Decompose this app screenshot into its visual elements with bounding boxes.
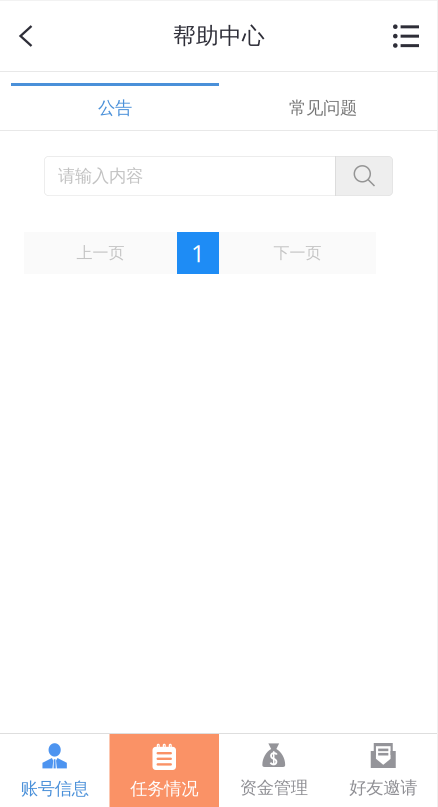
staticText: 请输入内容 — [58, 165, 143, 187]
staticText: 账号信息 — [21, 778, 89, 799]
staticText: 公告 — [98, 97, 132, 119]
button[interactable]: 好友邀请 — [328, 734, 438, 807]
button[interactable]: 任务情况 — [109, 734, 219, 807]
button[interactable]: 返回 — [0, 1, 47, 71]
staticText: 下一页 — [273, 243, 321, 263]
button[interactable]: 搜索 — [336, 156, 393, 196]
staticText: 任务情况 — [130, 778, 198, 799]
staticText: 资金管理 — [240, 777, 308, 798]
staticText: 1 — [191, 237, 205, 269]
button[interactable]: 菜单 — [383, 1, 438, 71]
button[interactable]: 账号信息 — [0, 734, 109, 807]
button[interactable]: 下一页 — [219, 232, 376, 274]
button[interactable]: 资金管理 — [219, 734, 328, 807]
staticText: 上一页 — [76, 243, 124, 263]
staticText: 帮助中心 — [173, 22, 265, 50]
button[interactable]: 公告 — [11, 72, 219, 130]
button[interactable]: 常见问题 — [219, 72, 427, 130]
staticText: 好友邀请 — [349, 777, 417, 798]
button[interactable]: 上一页 — [24, 232, 177, 274]
staticText: 常见问题 — [289, 97, 357, 119]
button[interactable]: 1 — [177, 232, 219, 274]
